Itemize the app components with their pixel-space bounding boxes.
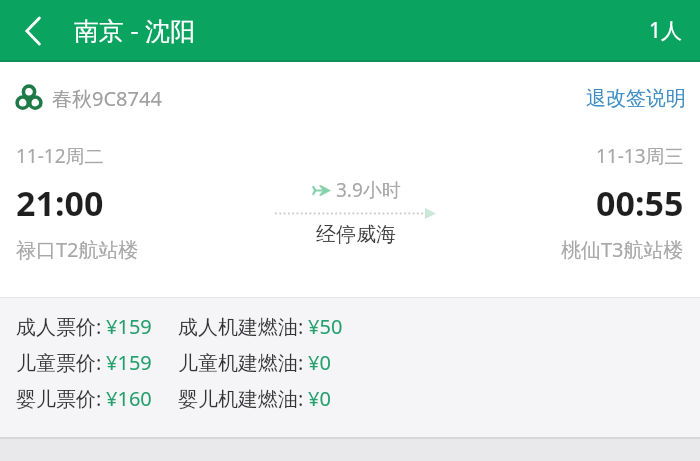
staticText: 成人机建燃油: xyxy=(178,313,304,340)
staticText: ¥159 xyxy=(106,313,152,340)
staticText: ¥159 xyxy=(106,349,152,376)
staticText: 11-13周三 xyxy=(596,143,684,169)
staticText: 禄口T2航站楼 xyxy=(16,236,139,263)
staticText: ¥0 xyxy=(308,349,331,376)
staticText: 儿童机建燃油: xyxy=(178,349,304,376)
staticText: 21:00 xyxy=(16,180,104,226)
staticText: 00:55 xyxy=(596,180,684,226)
staticText: ¥0 xyxy=(308,385,331,412)
staticText: 11-12周二 xyxy=(16,143,104,169)
staticText: ¥160 xyxy=(106,385,152,412)
staticText: 儿童票价: xyxy=(16,349,102,376)
staticText: 退改签说明 xyxy=(586,86,686,111)
staticText: 3.9小时 xyxy=(336,177,401,203)
staticText: 婴儿票价: xyxy=(16,385,102,412)
staticText: 1人 xyxy=(649,16,683,45)
staticText: 南京 - 沈阳 xyxy=(74,13,196,47)
button[interactable]: 退改签说明 xyxy=(572,77,700,120)
staticText: 婴儿机建燃油: xyxy=(178,385,304,412)
button[interactable]: Back xyxy=(8,7,56,55)
staticText: ¥50 xyxy=(308,313,343,340)
staticText: 春秋9C8744 xyxy=(52,85,162,112)
staticText: 成人票价: xyxy=(16,313,102,340)
staticText: 经停威海 xyxy=(316,222,396,247)
staticText: 桃仙T3航站楼 xyxy=(561,236,684,263)
